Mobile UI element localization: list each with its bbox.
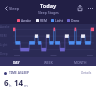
button[interactable]: DAY bbox=[0, 57, 32, 66]
staticText: REM bbox=[40, 18, 47, 22]
button[interactable]: WEEK bbox=[32, 57, 64, 66]
staticText: m bbox=[24, 83, 28, 88]
button[interactable]: MONTH bbox=[64, 57, 96, 66]
staticText: TIME ASLEEP bbox=[9, 71, 29, 75]
button[interactable]: Deep bbox=[65, 18, 82, 22]
staticText: Sleep bbox=[9, 6, 20, 11]
staticText: 14 bbox=[14, 77, 24, 88]
staticText: REM bbox=[0, 34, 7, 38]
staticText: Details bbox=[81, 71, 92, 75]
staticText: DAY bbox=[13, 60, 20, 64]
staticText: 6 bbox=[4, 77, 9, 88]
staticText: Light bbox=[0, 43, 8, 47]
button[interactable]: Share bbox=[75, 3, 85, 13]
staticText: Sleep Stages bbox=[38, 10, 59, 15]
staticText: WEEK bbox=[44, 60, 53, 64]
staticText: Deep bbox=[71, 18, 80, 22]
staticText: h bbox=[9, 83, 12, 88]
button[interactable]: REM bbox=[34, 18, 49, 22]
staticText: Awake bbox=[0, 25, 10, 29]
button[interactable]: Details bbox=[80, 71, 93, 75]
staticText: Deep bbox=[0, 52, 8, 56]
button[interactable]: Sleep stages chart bbox=[13, 24, 94, 57]
button[interactable]: Light bbox=[49, 18, 65, 22]
button[interactable]: More options bbox=[85, 3, 95, 13]
button[interactable]: Awake bbox=[15, 18, 34, 22]
button[interactable]: Back bbox=[1, 3, 11, 13]
staticText: Light bbox=[55, 18, 63, 22]
staticText: Awake bbox=[21, 18, 32, 22]
staticText: MONTH bbox=[74, 60, 87, 64]
staticText: Today bbox=[40, 2, 57, 9]
button[interactable]: Sleep bbox=[8, 6, 21, 11]
button[interactable]: TIME ASLEEP bbox=[0, 66, 96, 100]
